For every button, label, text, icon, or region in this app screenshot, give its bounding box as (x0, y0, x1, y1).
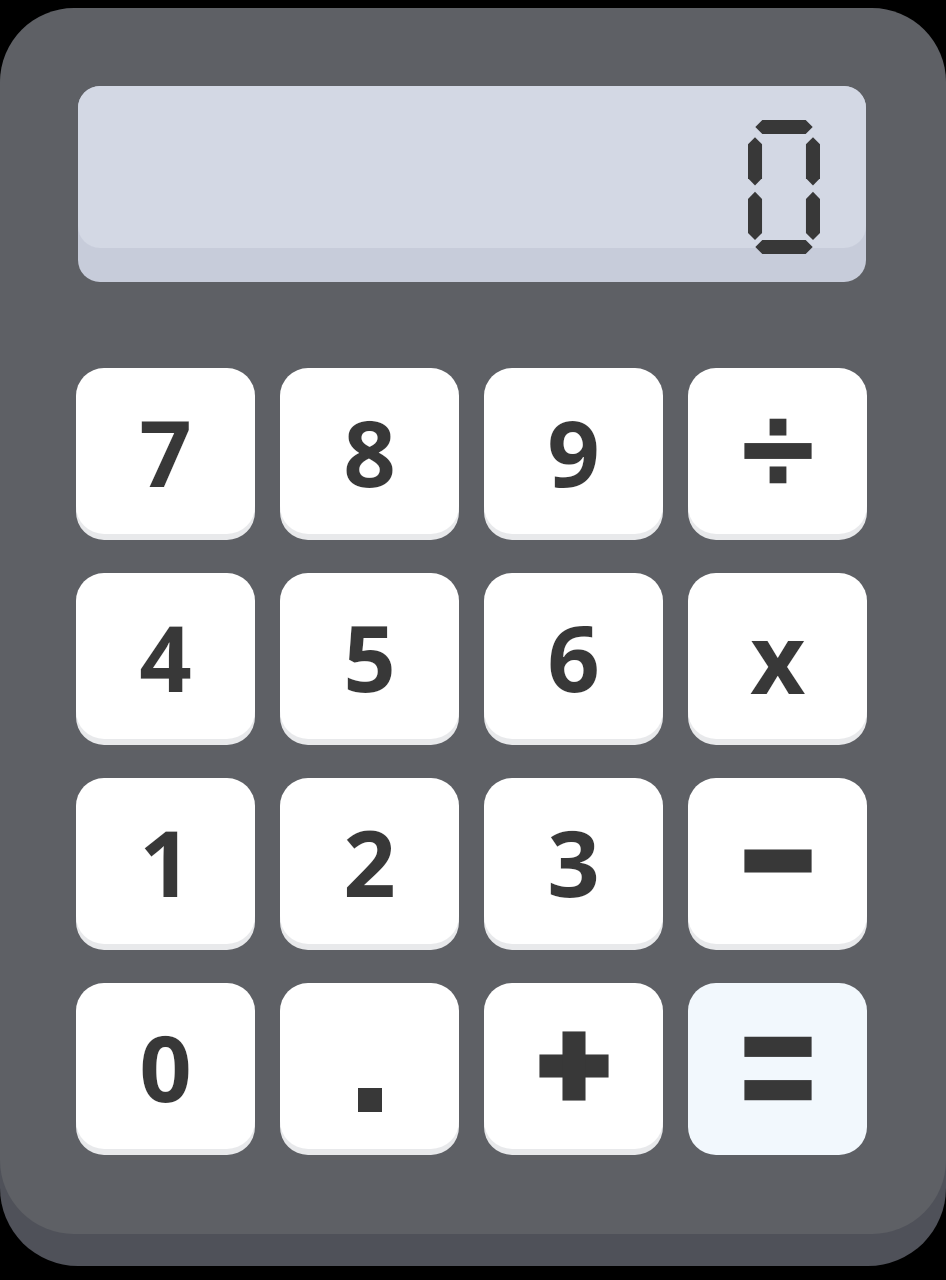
button[interactable]: 2 (280, 778, 459, 950)
button[interactable]: 3 (484, 778, 663, 950)
staticText: 4 (139, 594, 192, 719)
button[interactable]: 0 (76, 983, 255, 1155)
button[interactable]: 4 (76, 573, 255, 745)
staticText: 0 (139, 1004, 192, 1129)
staticText: 9 (547, 389, 600, 514)
button[interactable]: Multiply (688, 573, 867, 745)
button[interactable]: 5 (280, 573, 459, 745)
button[interactable]: Decimal point (280, 983, 459, 1155)
button[interactable]: 1 (76, 778, 255, 950)
staticText: 1 (139, 799, 192, 924)
staticText: x (750, 591, 806, 722)
button[interactable]: Equals (688, 983, 867, 1155)
staticText: 3 (547, 799, 600, 924)
button[interactable]: Subtract (688, 778, 867, 950)
staticText: 2 (343, 799, 396, 924)
button[interactable]: 8 (280, 368, 459, 540)
button[interactable]: 7 (76, 368, 255, 540)
button[interactable]: Add (484, 983, 663, 1155)
button[interactable]: 6 (484, 573, 663, 745)
staticText: 5 (343, 594, 396, 719)
button[interactable]: Divide (688, 368, 867, 540)
staticText: 8 (343, 389, 396, 514)
staticText: 6 (547, 594, 600, 719)
button[interactable]: 9 (484, 368, 663, 540)
staticText: 7 (139, 389, 192, 514)
